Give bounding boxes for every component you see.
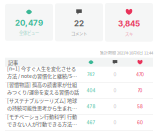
staticText: [習慣物語] 孤高の読書家が仕組 (7, 81, 77, 88)
staticText: 記事 (8, 58, 18, 66)
staticText: [n=1] 今すぐ人生を変化させる (7, 65, 76, 72)
staticText: [サステナブルツーリズム] 地球 (7, 97, 77, 104)
staticText: 20,479 (15, 18, 43, 28)
staticText: コメント (71, 30, 87, 36)
staticText: 0 (113, 72, 116, 77)
staticText: 0 (113, 88, 116, 93)
staticText: 467 (86, 120, 95, 125)
staticText: 478 (86, 104, 95, 109)
staticText: スキ (125, 30, 133, 37)
staticText: 60 (137, 120, 143, 125)
staticText: 方法 / noteの習慣化と継続/SDGs (7, 72, 79, 79)
button[interactable]: 22 (55, 3, 103, 41)
button[interactable]: [サステナブルツーリズム] 地球 (5, 99, 153, 115)
staticText: の持続可能性思考から生まれた… (7, 104, 79, 111)
button[interactable]: 3,845 (105, 3, 153, 42)
staticText: 470 (136, 72, 144, 77)
staticText: 3,845 (118, 19, 140, 29)
staticText: 0 (113, 120, 116, 125)
staticText: 全体ビュー (19, 30, 39, 36)
button[interactable]: 20,479 (5, 4, 53, 41)
staticText: 404 (86, 88, 95, 93)
staticText: 70 (137, 88, 142, 93)
button[interactable]: [n=1] 今すぐ人生を変化させる (5, 67, 153, 83)
staticText: 742 (87, 72, 95, 77)
button[interactable]: [習慣物語] 孤高の読書家が仕組 (5, 83, 153, 99)
staticText: できない人が行動できる方法は… (7, 120, 79, 127)
staticText: 0 (113, 104, 116, 109)
staticText: みつくり/運命を変える習慣の話 (7, 88, 79, 95)
button[interactable]: [モチベーション行動科学] 行動 (5, 115, 153, 131)
staticText: 22 (74, 18, 84, 28)
staticText: 58 (137, 104, 143, 109)
staticText: 集計期間 2021年10月6日 11:44 (100, 50, 153, 56)
staticText: [モチベーション行動科学] 行動 (7, 113, 77, 120)
